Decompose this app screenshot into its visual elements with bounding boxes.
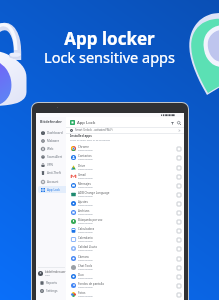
button[interactable]: Archivos [66, 208, 184, 217]
button[interactable]: Contactos [66, 153, 184, 162]
button[interactable]: Gmail [66, 172, 184, 181]
staticText: Fondos de pantalla [78, 282, 104, 286]
staticText: Desprotegido [78, 240, 93, 243]
staticText: Smart Unlock - activated Wi-Fi [75, 128, 113, 132]
button[interactable]: Settings [36, 287, 66, 295]
staticText: Desprotegido [78, 295, 93, 298]
staticText: Desprotegido [78, 268, 93, 271]
staticText: Desprotegido [78, 259, 93, 262]
button[interactable]: Fotos [66, 290, 184, 299]
button[interactable]: Search [175, 119, 182, 126]
button[interactable]: Búsqueda por voz [66, 217, 184, 226]
staticText: Mensajes [78, 182, 91, 186]
staticText: ADB Change Language [78, 191, 110, 195]
staticText: Desprotegido [78, 168, 93, 171]
staticText: Drive [78, 164, 86, 168]
staticText: Desprotegido [78, 177, 93, 180]
staticText: Desprotegido [78, 213, 93, 216]
staticText: Desprotegido [78, 186, 93, 189]
staticText: Lock sensitive apps [44, 47, 175, 67]
staticText: Chrome [78, 145, 89, 149]
button[interactable]: Fondos de pantalla [66, 281, 184, 290]
staticText: Ajustes [78, 200, 88, 204]
button[interactable]: Dashboard [38, 129, 66, 136]
staticText: Calendario [78, 236, 93, 240]
staticText: Free [45, 274, 50, 277]
button[interactable]: App Lock [38, 186, 66, 193]
staticText: Desprotegido [78, 158, 93, 161]
button[interactable]: Scam Alert [38, 153, 66, 160]
staticText: Gmail [78, 173, 86, 177]
staticText: Account Privacy [47, 180, 66, 184]
button[interactable]: Web Protection [38, 145, 66, 152]
staticText: Desprotegido [78, 149, 93, 152]
button[interactable]: bitdefender.user [36, 268, 66, 279]
staticText: VPN [47, 163, 53, 167]
button[interactable]: Chat Tools [66, 263, 184, 272]
button[interactable]: Ajustes [66, 199, 184, 208]
button[interactable]: Reports [36, 279, 66, 287]
staticText: Reports [46, 281, 57, 285]
button[interactable]: Calendario [66, 235, 184, 244]
staticText: Fotos [78, 291, 86, 295]
staticText: Búsqueda por voz [78, 218, 103, 222]
staticText: Desprotegido [78, 222, 93, 225]
staticText: App Lock [47, 188, 60, 192]
staticText: Web Protection [47, 147, 66, 151]
button[interactable]: Filter [169, 120, 175, 126]
button[interactable]: VPN [38, 161, 66, 168]
button[interactable]: Calculadora [66, 226, 184, 235]
button[interactable]: Chrome [66, 144, 184, 153]
staticText: Bitdefender [40, 119, 62, 124]
button[interactable]: Anti-Theft [38, 169, 66, 176]
staticText: Scam Alert [47, 155, 63, 159]
staticText: Malware Scanner [47, 139, 66, 143]
staticText: Desprotegido [78, 231, 93, 234]
staticText: Desprotegido [78, 204, 93, 207]
button[interactable]: ADB Change Language [66, 190, 184, 199]
staticText: Cámara [78, 255, 89, 259]
staticText: Calidad Lluvia [78, 245, 97, 249]
staticText: Desprotegido [78, 249, 93, 252]
staticText: Contactos [78, 154, 92, 158]
button[interactable]: Malware Scanner [38, 137, 66, 144]
button[interactable]: Cámara [66, 254, 184, 263]
staticText: Chat Tools [78, 264, 93, 268]
button[interactable]: Calidad Lluvia [66, 244, 184, 253]
button[interactable]: Duo [66, 272, 184, 281]
button[interactable]: App Lock [66, 118, 184, 127]
button[interactable]: Drive [66, 163, 184, 172]
staticText: App locker [64, 27, 155, 50]
staticText: Anti-Theft [47, 171, 61, 175]
staticText: Desprotegido [78, 195, 93, 198]
staticText: Press to select apps to be protected [70, 138, 110, 141]
staticText: Duo [78, 273, 84, 277]
button[interactable]: Mensajes [66, 181, 184, 190]
staticText: Desprotegido [78, 286, 93, 289]
button[interactable]: Smart Unlock - activated Wi-Fi [66, 127, 184, 133]
staticText: Dashboard [47, 131, 63, 135]
staticText: bitdefender.user [45, 270, 66, 274]
staticText: Settings [46, 289, 58, 293]
button[interactable]: Account Privacy [38, 178, 66, 185]
staticText: Desprotegido [78, 277, 93, 280]
staticText: App Lock [77, 120, 96, 126]
staticText: Calculadora [78, 227, 95, 231]
staticText: Installed apps [70, 134, 92, 138]
staticText: Archivos [78, 209, 90, 213]
